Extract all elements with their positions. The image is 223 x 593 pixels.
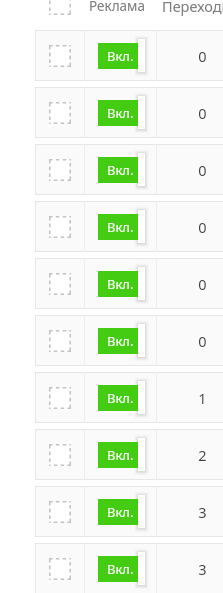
button[interactable]: Campaign enabled, tap to turn off	[98, 324, 146, 357]
staticText: Вкл.	[107, 104, 134, 122]
staticText: Вкл.	[107, 560, 134, 578]
staticText: Переходы	[162, 0, 223, 16]
staticText: Вкл.	[107, 446, 134, 464]
staticText: Вкл.	[107, 47, 134, 65]
button[interactable]: Select row	[49, 45, 71, 67]
button[interactable]: Campaign enabled, tap to turn off	[98, 495, 146, 528]
button[interactable]: Campaign enabled, tap to turn off	[98, 267, 146, 300]
staticText: 0	[198, 217, 207, 237]
button[interactable]: Select row	[35, 30, 223, 81]
staticText: Реклама	[89, 0, 145, 15]
button[interactable]: Select row	[35, 201, 223, 252]
button[interactable]: Campaign enabled, tap to turn off	[98, 438, 146, 471]
button[interactable]: Select row	[49, 273, 71, 295]
button[interactable]: Select row	[35, 87, 223, 138]
button[interactable]: Select row	[49, 102, 71, 124]
button[interactable]: Campaign enabled, tap to turn off	[98, 96, 146, 129]
button[interactable]: Select row	[49, 0, 71, 15]
button[interactable]: Реклама	[85, 0, 156, 30]
staticText: Вкл.	[107, 218, 134, 236]
button[interactable]: Select row	[49, 558, 71, 580]
button[interactable]: Select row	[35, 486, 223, 537]
staticText: 0	[198, 160, 207, 180]
staticText: 1	[198, 388, 207, 408]
button[interactable]: Campaign enabled, tap to turn off	[98, 552, 146, 585]
staticText: 3	[198, 559, 207, 579]
button[interactable]: Select row	[49, 159, 71, 181]
staticText: 2	[198, 445, 207, 465]
staticText: Вкл.	[107, 503, 134, 521]
button[interactable]: Campaign enabled, tap to turn off	[98, 381, 146, 414]
staticText: 0	[198, 46, 207, 66]
button[interactable]: Select row	[35, 144, 223, 195]
button[interactable]: Campaign enabled, tap to turn off	[98, 153, 146, 186]
staticText: Вкл.	[107, 389, 134, 407]
button[interactable]: Select row	[35, 543, 223, 593]
staticText: 3	[198, 502, 207, 522]
staticText: Вкл.	[107, 161, 134, 179]
staticText: Вкл.	[107, 332, 134, 350]
staticText: 0	[198, 331, 207, 351]
button[interactable]: Select row	[49, 216, 71, 238]
button[interactable]: Campaign enabled, tap to turn off	[98, 39, 146, 72]
button[interactable]: Select row	[35, 372, 223, 423]
button[interactable]: Campaign enabled, tap to turn off	[98, 210, 146, 243]
button[interactable]: Select row	[35, 315, 223, 366]
button[interactable]: Select row	[49, 330, 71, 352]
staticText: Вкл.	[107, 275, 134, 293]
button[interactable]: Переходы	[157, 0, 223, 30]
button[interactable]: Select row	[49, 501, 71, 523]
button[interactable]: Select row	[49, 387, 71, 409]
staticText: 0	[198, 274, 207, 294]
button[interactable]: Select row	[49, 444, 71, 466]
button[interactable]: Select row	[35, 258, 223, 309]
staticText: 0	[198, 103, 207, 123]
button[interactable]: Select row	[35, 429, 223, 480]
